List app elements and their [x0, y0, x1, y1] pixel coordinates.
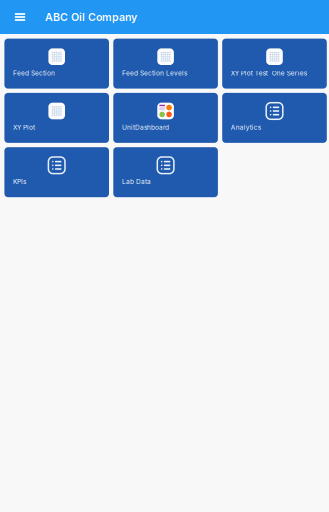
- button[interactable]: Feed Section Levels: [113, 39, 218, 89]
- staticText: KPIs: [13, 178, 26, 186]
- staticText: Analytics: [231, 123, 261, 131]
- button[interactable]: XY Plot Test One Series: [222, 39, 327, 89]
- staticText: Feed Section Levels: [122, 69, 187, 77]
- staticText: XY Plot: [13, 123, 35, 131]
- button[interactable]: Lab Data: [113, 147, 218, 197]
- staticText: Feed Section: [13, 69, 55, 77]
- staticText: Lab Data: [122, 178, 151, 186]
- button[interactable]: Analytics: [222, 93, 327, 143]
- button[interactable]: UnitDashboard: [113, 93, 218, 143]
- button[interactable]: Menu: [7, 0, 32, 34]
- staticText: ABC Oil Company: [45, 10, 137, 23]
- staticText: XY Plot Test One Series: [231, 69, 307, 77]
- staticText: UnitDashboard: [122, 123, 169, 131]
- button[interactable]: KPIs: [4, 147, 109, 197]
- button[interactable]: XY Plot: [4, 93, 109, 143]
- button[interactable]: Feed Section: [4, 39, 109, 89]
